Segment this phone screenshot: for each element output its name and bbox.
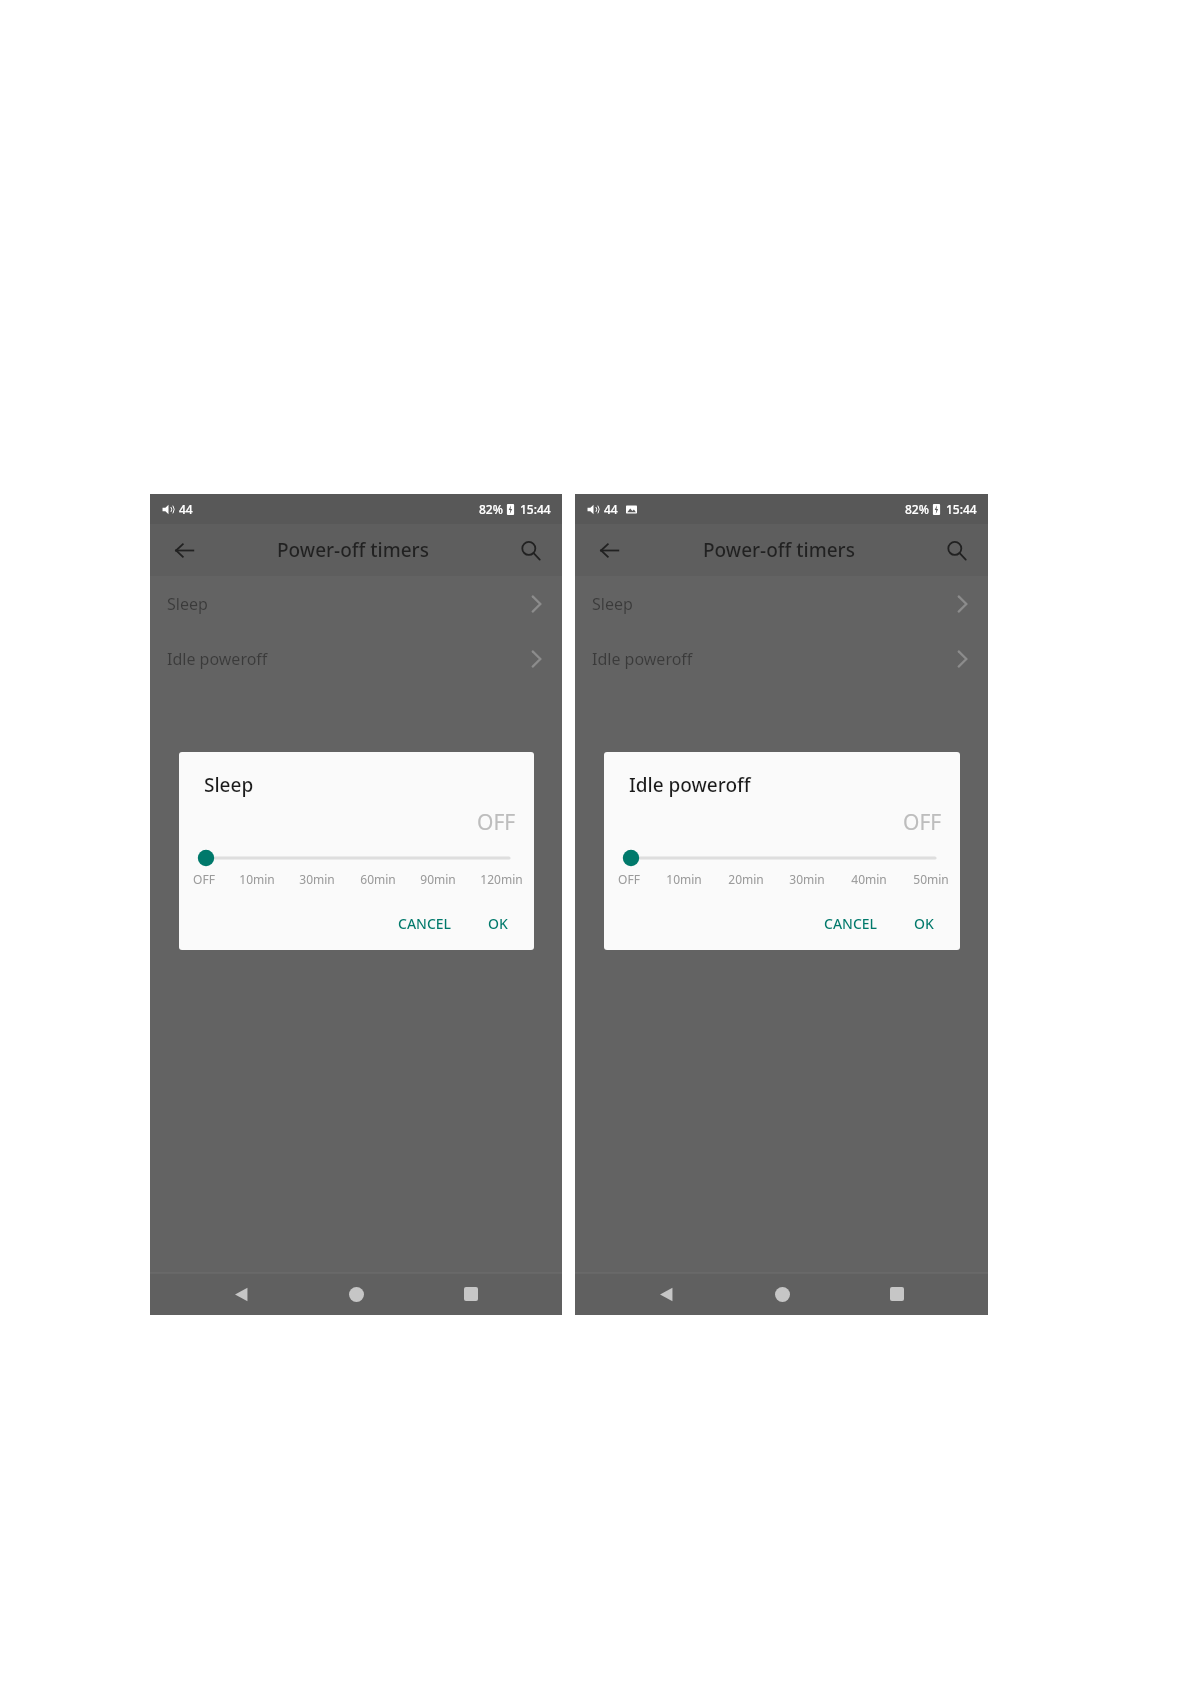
- button[interactable]: Search: [936, 530, 976, 570]
- staticText: Idle poweroff: [592, 648, 693, 670]
- staticText: OFF: [477, 808, 516, 837]
- button[interactable]: Sleep: [575, 576, 988, 631]
- staticText: 30min: [789, 871, 825, 887]
- button[interactable]: Back: [642, 1273, 690, 1315]
- staticText: OFF: [903, 808, 942, 837]
- staticText: 40min: [851, 871, 887, 887]
- staticText: 10min: [666, 871, 702, 887]
- staticText: 90min: [420, 871, 456, 887]
- staticText: Idle poweroff: [167, 648, 268, 670]
- button[interactable]: Timer slider: [629, 850, 935, 866]
- staticText: 82%: [905, 501, 929, 517]
- staticText: Idle poweroff: [629, 772, 751, 798]
- staticText: OFF: [618, 871, 640, 887]
- staticText: CANCEL: [824, 914, 878, 933]
- staticText: 20min: [728, 871, 764, 887]
- staticText: OK: [914, 914, 934, 933]
- staticText: Sleep: [167, 593, 208, 615]
- staticText: 10min: [239, 871, 275, 887]
- staticText: 60min: [360, 871, 396, 887]
- button[interactable]: Recent apps: [873, 1273, 921, 1315]
- staticText: OFF: [193, 871, 215, 887]
- button[interactable]: Home: [758, 1273, 806, 1315]
- button[interactable]: Back: [164, 530, 204, 570]
- button[interactable]: Idle poweroff: [575, 631, 988, 686]
- button[interactable]: Back: [217, 1273, 265, 1315]
- button[interactable]: OK: [902, 905, 946, 942]
- button[interactable]: Home: [332, 1273, 380, 1315]
- staticText: 120min: [480, 871, 523, 887]
- button[interactable]: Search: [510, 530, 550, 570]
- staticText: 15:44: [520, 501, 551, 517]
- button[interactable]: Back: [589, 530, 629, 570]
- button[interactable]: Idle poweroff: [150, 631, 562, 686]
- button[interactable]: OK: [476, 905, 520, 942]
- button[interactable]: Sleep: [150, 576, 562, 631]
- button[interactable]: Recent apps: [447, 1273, 495, 1315]
- staticText: 15:44: [946, 501, 977, 517]
- button[interactable]: CANCEL: [386, 905, 464, 942]
- staticText: Power-off timers: [277, 537, 429, 563]
- button[interactable]: Timer slider: [204, 850, 509, 866]
- staticText: 44: [604, 501, 618, 517]
- staticText: Power-off timers: [703, 537, 855, 563]
- button[interactable]: CANCEL: [812, 905, 890, 942]
- staticText: OK: [488, 914, 508, 933]
- staticText: 82%: [479, 501, 503, 517]
- staticText: 30min: [299, 871, 335, 887]
- staticText: Sleep: [592, 593, 633, 615]
- staticText: 50min: [913, 871, 949, 887]
- staticText: 44: [179, 501, 193, 517]
- staticText: CANCEL: [398, 914, 452, 933]
- staticText: Sleep: [204, 772, 254, 798]
